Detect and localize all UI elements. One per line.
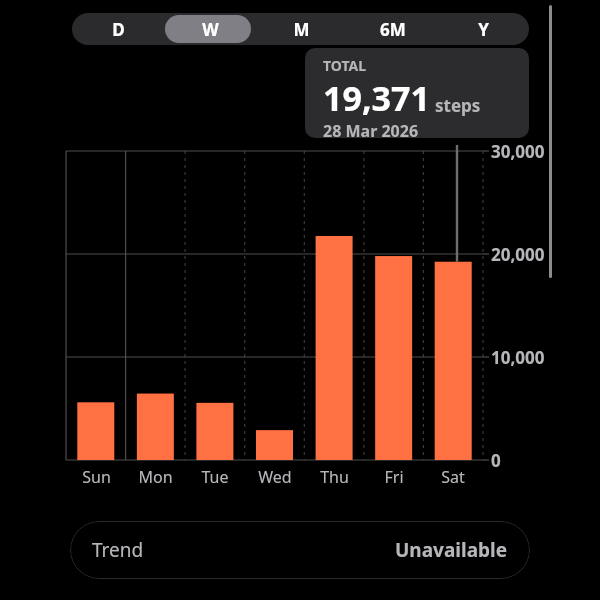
button[interactable]: D — [72, 13, 164, 45]
staticText: Sun — [82, 466, 111, 488]
staticText: 0 — [491, 449, 501, 472]
staticText: Sat — [441, 466, 465, 488]
staticText: 28 Mar 2026 — [323, 120, 419, 137]
staticText: steps — [435, 94, 481, 117]
staticText: 19,371 — [323, 75, 430, 121]
staticText: Thu — [320, 466, 349, 488]
staticText: Mon — [138, 466, 173, 488]
staticText: TOTAL — [323, 56, 367, 75]
staticText: Unavailable — [395, 537, 508, 563]
staticText: 6M — [380, 18, 406, 41]
staticText: Fri — [384, 466, 404, 488]
staticText: Wed — [258, 466, 292, 488]
button[interactable]: Y — [438, 13, 529, 45]
staticText: W — [202, 18, 219, 41]
staticText: Trend — [92, 537, 144, 563]
button[interactable]: M — [256, 13, 347, 45]
staticText: Tue — [201, 466, 229, 488]
staticText: M — [293, 18, 310, 41]
button[interactable]: Trend — [70, 521, 530, 579]
staticText: 20,000 — [491, 243, 545, 266]
staticText: D — [112, 18, 125, 41]
staticText: 10,000 — [491, 346, 545, 369]
button[interactable]: W — [164, 13, 256, 45]
staticText: 30,000 — [491, 140, 545, 163]
staticText: Y — [478, 18, 489, 41]
button[interactable]: 6M — [347, 13, 438, 45]
